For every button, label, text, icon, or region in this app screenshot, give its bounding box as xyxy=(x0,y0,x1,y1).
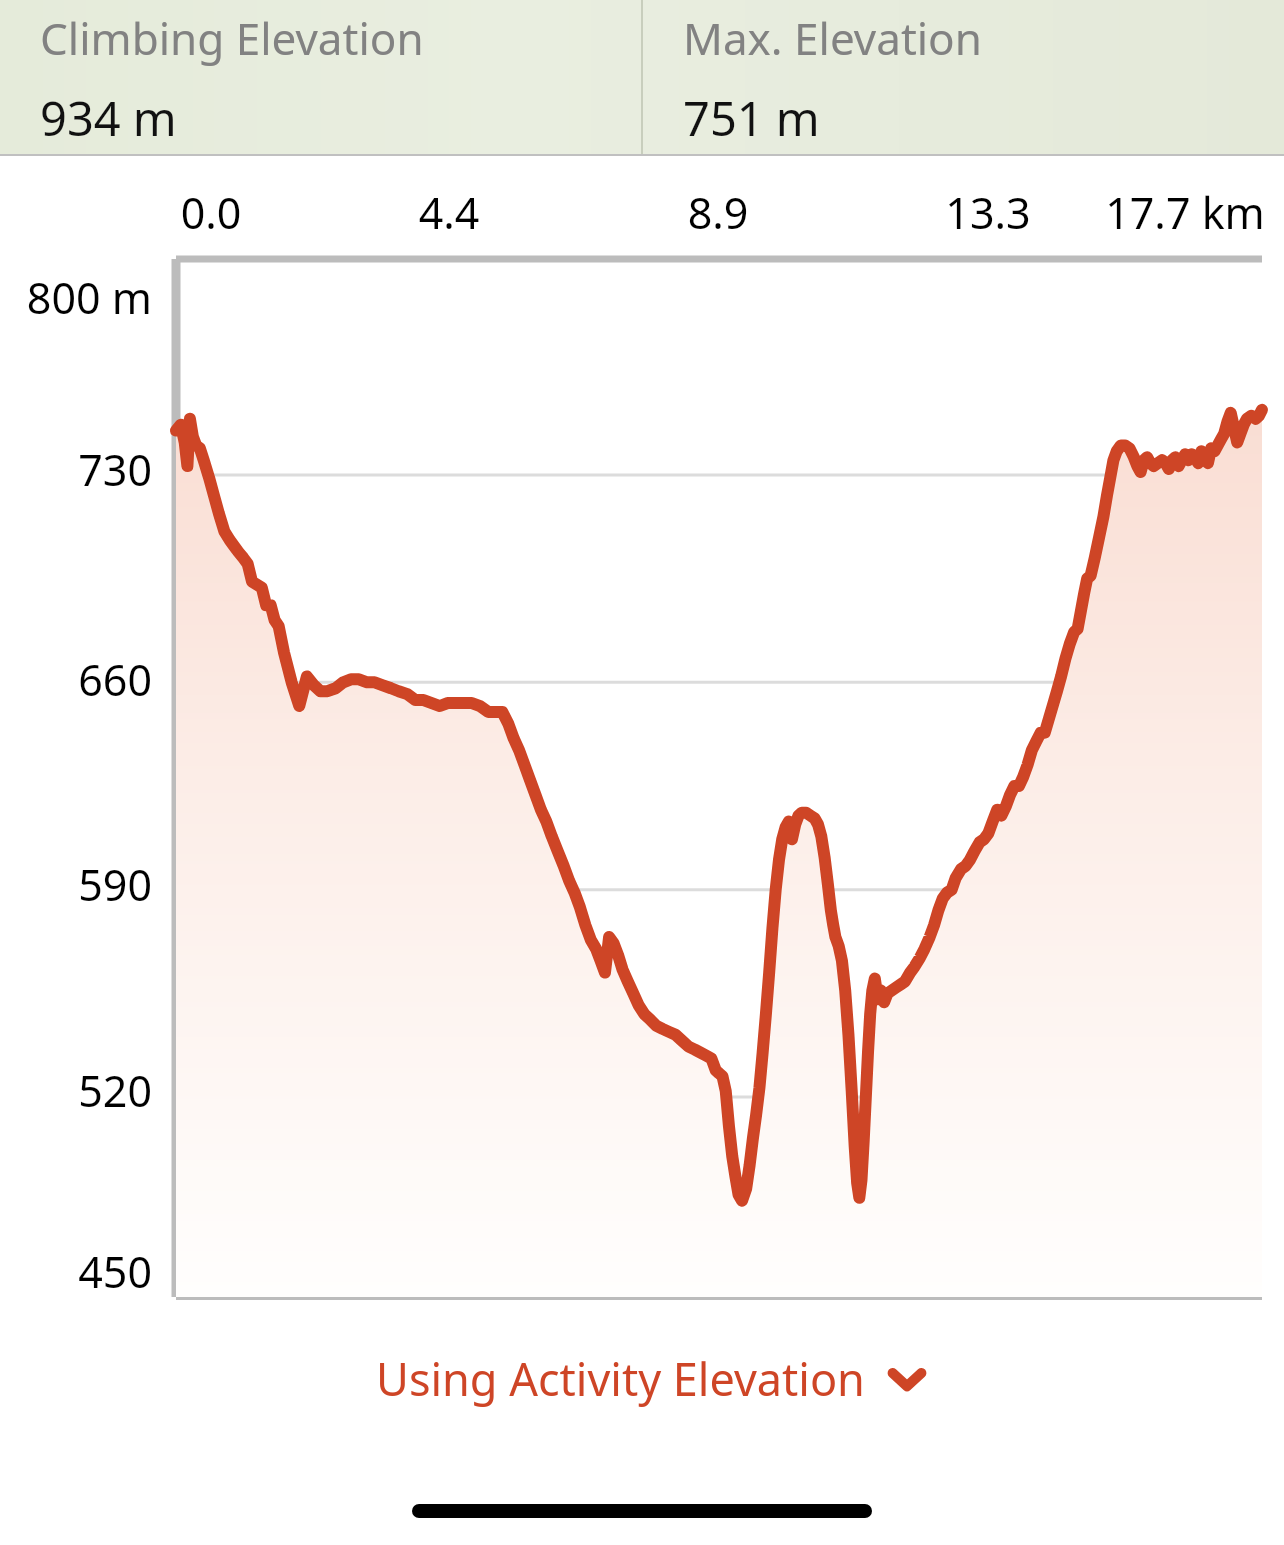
staticText: Max. Elevation xyxy=(683,8,982,68)
staticText: 934 m xyxy=(40,86,177,150)
button[interactable]: Climbing Elevation xyxy=(0,0,641,156)
staticText: 730 xyxy=(0,440,152,499)
other: Change elevation source xyxy=(889,1367,925,1391)
staticText: 8.9 xyxy=(608,183,828,242)
staticText: 660 xyxy=(0,650,152,709)
staticText: 450 xyxy=(0,1242,152,1301)
button[interactable]: Max. Elevation xyxy=(643,0,1284,156)
staticText: 17.7 km xyxy=(1075,183,1284,242)
staticText: 800 m xyxy=(0,268,152,327)
button[interactable]: Using Activity Elevation xyxy=(368,1338,933,1419)
staticText: 751 m xyxy=(683,86,820,150)
staticText: Using Activity Elevation xyxy=(376,1348,865,1409)
staticText: 0.0 xyxy=(101,183,321,242)
staticText: 590 xyxy=(0,855,152,914)
staticText: 13.3 xyxy=(878,183,1098,242)
staticText: 520 xyxy=(0,1061,152,1120)
staticText: 4.4 xyxy=(339,183,559,242)
staticText: Climbing Elevation xyxy=(40,8,424,68)
